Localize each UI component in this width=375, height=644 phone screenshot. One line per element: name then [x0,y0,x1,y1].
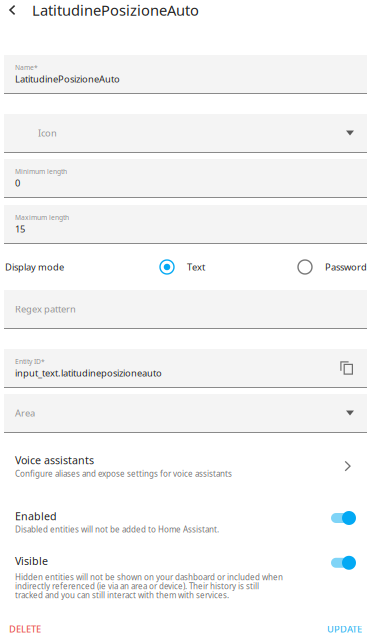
button[interactable]: Enabled [0,509,375,535]
button[interactable]: Password [298,260,367,274]
staticText: Voice assistants [15,453,94,467]
button[interactable]: Name* [4,55,367,94]
button[interactable]: UPDATE [318,615,371,643]
button[interactable]: Back [0,0,32,20]
staticText: UPDATE [327,623,362,635]
button[interactable]: Regex pattern [4,290,367,329]
staticText: Display mode [5,261,64,273]
staticText: Icon [38,127,57,139]
staticText: Name* [15,63,38,72]
button[interactable]: Icon [4,114,367,153]
staticText: Visible [15,554,48,568]
staticText: indirectly referenced (ie via an area or… [15,581,259,591]
staticText: Area [15,407,35,419]
button[interactable]: Text [160,260,205,274]
staticText: Hidden entities will not be shown on you… [15,572,283,583]
staticText: Entity ID* [15,357,45,366]
staticText: 0 [15,177,20,189]
button[interactable]: DELETE [0,615,50,643]
staticText: Text [187,261,205,273]
staticText: tracked and you can still interact with … [15,590,229,600]
button[interactable]: Area [4,394,367,433]
staticText: input_text.latitudineposizioneauto [15,367,162,379]
staticText: 15 [15,223,25,235]
staticText: Configure aliases and expose settings fo… [15,468,232,479]
button[interactable]: Visible [0,554,375,600]
staticText: Regex pattern [15,303,76,315]
button[interactable]: Maximum length [4,205,367,244]
staticText: Disabled entities will not be added to H… [15,524,219,535]
staticText: Password [325,261,367,273]
button[interactable]: Minimum length [4,159,367,198]
button[interactable]: Entity ID* [4,349,367,388]
staticText: DELETE [9,623,41,635]
staticText: Enabled [15,509,57,523]
staticText: Maximum length [15,213,69,222]
staticText: LatitudinePosizioneAuto [15,73,120,85]
staticText: LatitudinePosizioneAuto [32,0,199,20]
staticText: Minimum length [15,167,67,176]
button[interactable]: Voice assistants [0,450,375,482]
